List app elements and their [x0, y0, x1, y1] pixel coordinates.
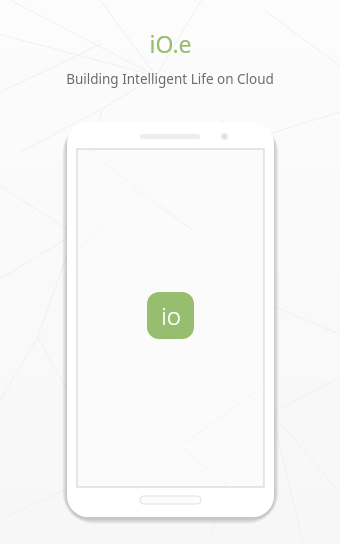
button[interactable]: iO.e app logo — [147, 292, 194, 339]
staticText: iO.e — [149, 28, 192, 59]
staticText: Building Intelligent Life on Cloud — [66, 70, 274, 88]
staticText: io — [161, 299, 181, 332]
